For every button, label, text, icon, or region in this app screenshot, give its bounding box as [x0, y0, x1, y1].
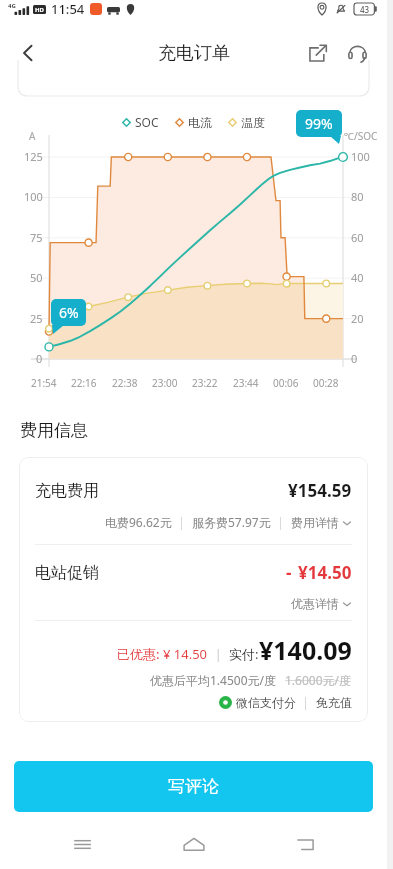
staticText: 80	[351, 189, 364, 204]
staticText: 4G	[8, 2, 16, 10]
staticText: ℃/SOC	[344, 129, 378, 143]
staticText: |	[172, 514, 192, 530]
staticText: -	[286, 561, 292, 584]
staticText: 0	[36, 351, 43, 366]
staticText: 11:54	[51, 0, 85, 18]
staticText: 75	[30, 230, 43, 245]
staticText: ¥ 14.50	[163, 645, 208, 663]
staticText: ¥154.59	[288, 479, 352, 502]
button[interactable]: 优惠详情	[291, 596, 352, 611]
staticText: |	[296, 694, 316, 710]
staticText: 充电费用	[35, 481, 99, 501]
staticText: 100	[351, 149, 370, 164]
staticText: 23:44	[233, 376, 259, 390]
staticText: 优惠后平均1.4500元/度	[150, 672, 277, 688]
staticText: A	[29, 129, 36, 143]
button[interactable]: Back	[6, 31, 50, 75]
button[interactable]: 费用详情	[291, 515, 352, 530]
staticText: 费用信息	[20, 420, 88, 441]
staticText: 0	[351, 351, 358, 366]
staticText: 已优惠:	[117, 645, 163, 663]
staticText: 23:00	[152, 376, 178, 390]
button[interactable]: Home	[165, 820, 223, 869]
staticText: 温度	[241, 115, 265, 130]
staticText: |	[271, 514, 291, 530]
staticText: 1.6000元/度	[285, 672, 352, 688]
staticText: 25	[30, 311, 43, 326]
staticText: ¥14.50	[298, 561, 352, 584]
button[interactable]: Share	[297, 33, 337, 73]
staticText: 写评论	[168, 776, 219, 797]
staticText: 23:22	[192, 376, 218, 390]
staticText: 22:38	[112, 376, 138, 390]
staticText: 优惠详情	[291, 596, 339, 611]
staticText: 60	[351, 230, 364, 245]
staticText: 20	[351, 311, 364, 326]
staticText: 实付:	[229, 645, 259, 663]
staticText: 费用详情	[291, 515, 339, 530]
staticText: 125	[24, 149, 43, 164]
button[interactable]: 写评论	[14, 761, 373, 812]
button[interactable]: Customer service	[337, 33, 377, 73]
staticText: 6%	[59, 303, 79, 322]
staticText: 99%	[305, 114, 333, 133]
staticText: 43	[360, 4, 370, 15]
staticText: 电费96.62元	[105, 514, 172, 530]
button[interactable]: Recents	[53, 820, 111, 869]
staticText: 充电订单	[158, 42, 230, 65]
staticText: 100	[24, 189, 43, 204]
button[interactable]: Back	[276, 820, 334, 869]
staticText: 免充值	[316, 695, 352, 710]
staticText: 微信支付分	[236, 695, 296, 710]
staticText: 电流	[188, 115, 212, 130]
staticText: ¥140.09	[259, 633, 352, 667]
staticText: SOC	[135, 114, 159, 130]
staticText: 22:16	[71, 376, 97, 390]
staticText: 服务费57.97元	[192, 514, 271, 530]
staticText: |	[208, 645, 229, 663]
staticText: HD	[35, 6, 44, 14]
staticText: 40	[351, 270, 364, 285]
staticText: 21:54	[31, 376, 57, 390]
staticText: 00:28	[313, 376, 339, 390]
staticText: 00:06	[273, 376, 299, 390]
staticText: 50	[30, 270, 43, 285]
staticText: 电站促销	[35, 563, 99, 583]
